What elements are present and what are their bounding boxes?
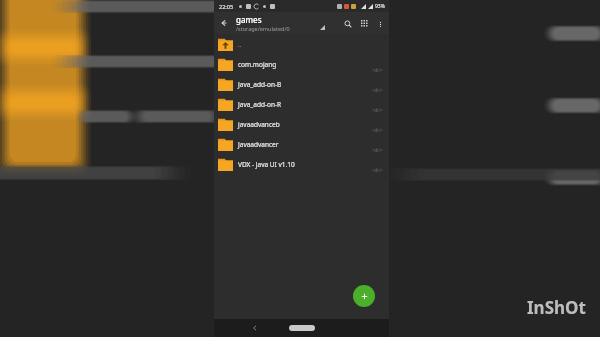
button[interactable]: Back	[216, 15, 232, 31]
button[interactable]: Back	[246, 319, 264, 337]
staticText: com.mojang	[238, 60, 277, 69]
staticText: games	[236, 14, 262, 25]
button[interactable]: Javaadvancer	[214, 134, 389, 154]
staticText: <dir>	[372, 107, 383, 113]
staticText: 22:05	[219, 3, 234, 10]
staticText: <dir>	[372, 147, 383, 153]
button[interactable]: ..	[214, 34, 389, 54]
staticText: 93%	[375, 3, 385, 10]
button[interactable]: More options	[373, 17, 387, 31]
button[interactable]: Search	[339, 15, 356, 32]
staticText: <dir>	[372, 127, 383, 133]
staticText: InShOt	[527, 296, 586, 319]
button[interactable]: Home	[289, 325, 315, 331]
staticText: /storage/emulated/0	[236, 25, 290, 32]
staticText: <dir>	[372, 87, 383, 93]
button[interactable]: VDX - Java UI v1.10	[214, 154, 389, 174]
staticText: <dir>	[372, 67, 383, 73]
button[interactable]: Java_add-on-R	[214, 94, 389, 114]
staticText: VDX - Java UI v1.10	[238, 160, 295, 169]
button[interactable]: Java_add-on-B	[214, 74, 389, 94]
button[interactable]: Add	[353, 285, 375, 307]
staticText: ..	[238, 40, 242, 49]
staticText: Java_add-on-R	[238, 100, 282, 109]
staticText: Javaadvancer	[238, 140, 279, 149]
staticText: javaadvanceb	[238, 120, 280, 129]
button[interactable]: Grid view	[356, 15, 373, 32]
staticText: Java_add-on-B	[238, 80, 282, 89]
button[interactable]: javaadvanceb	[214, 114, 389, 134]
staticText: <dir>	[372, 167, 383, 173]
button[interactable]: com.mojang	[214, 54, 389, 74]
